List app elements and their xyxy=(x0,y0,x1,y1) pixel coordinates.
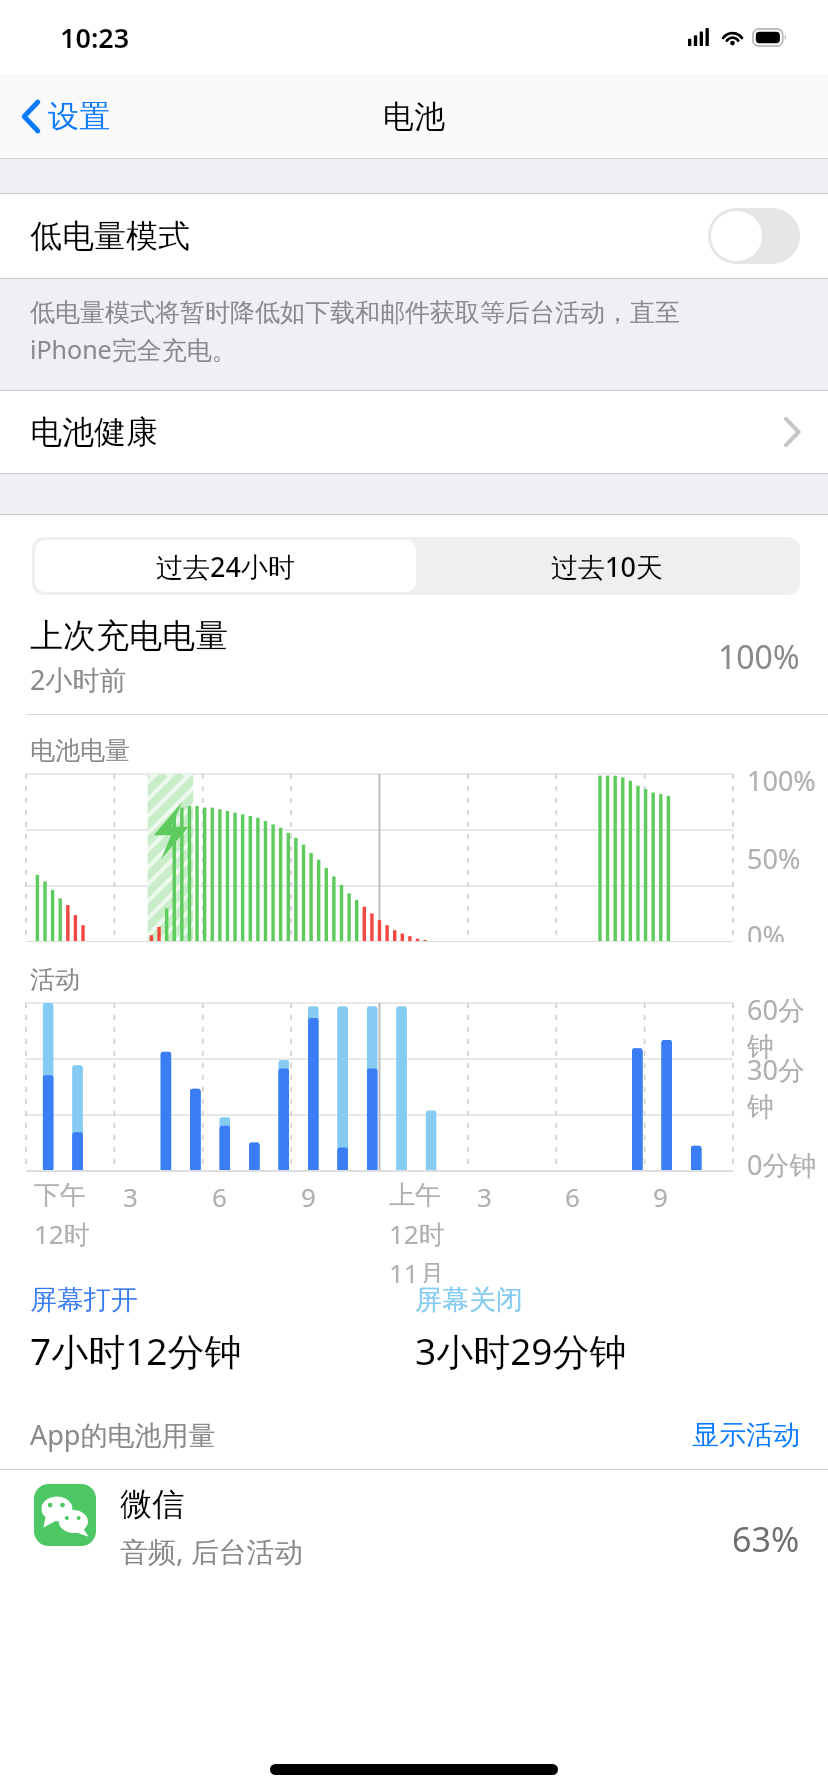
staticText: 2小时前 xyxy=(30,661,127,698)
staticText: 上次充电电量 xyxy=(30,615,228,657)
staticText: 100% xyxy=(718,635,800,679)
button[interactable]: 电池健康 xyxy=(0,391,828,473)
staticText: 过去10天 xyxy=(551,548,663,585)
staticText: 9 xyxy=(301,1179,316,1214)
staticText: 过去24小时 xyxy=(156,548,295,585)
staticText: 低电量模式将暂时降低如下载和邮件获取等后台活动，直至 iPhone完全充电。 xyxy=(30,297,680,366)
staticText: 3 xyxy=(477,1179,492,1214)
staticText: 电池 xyxy=(383,97,445,136)
staticText: 10:23 xyxy=(60,19,130,56)
staticText: 63% xyxy=(732,1516,800,1562)
staticText: 3 xyxy=(123,1179,138,1214)
button[interactable]: 设置 xyxy=(0,87,124,146)
staticText: 上午 12时 11月29日 xyxy=(389,1179,469,1283)
staticText: 低电量模式 xyxy=(30,216,190,256)
staticText: 下午 12时 xyxy=(34,1179,90,1252)
staticText: App的电池用量 xyxy=(30,1416,216,1453)
staticText: 0% xyxy=(747,917,785,954)
button[interactable]: 过去24小时 xyxy=(35,540,416,592)
staticText: 微信 xyxy=(120,1484,184,1524)
button[interactable]: 微信 xyxy=(0,1470,828,1590)
staticText: 显示活动 xyxy=(692,1418,800,1452)
staticText: 9 xyxy=(653,1179,668,1214)
staticText: 100% xyxy=(747,762,816,799)
staticText: 50% xyxy=(747,840,801,877)
staticText: 屏幕关闭 xyxy=(415,1283,523,1317)
staticText: 活动 xyxy=(30,964,80,995)
staticText: 3小时29分钟 xyxy=(415,1325,627,1376)
staticText: 屏幕打开 xyxy=(30,1283,138,1317)
staticText: 6 xyxy=(565,1179,580,1214)
button[interactable]: 显示活动 xyxy=(692,1418,800,1452)
staticText: 6 xyxy=(212,1179,227,1214)
staticText: 0分钟 xyxy=(747,1146,817,1183)
staticText: 30分钟 xyxy=(747,1051,828,1124)
button[interactable]: 过去10天 xyxy=(416,540,797,592)
staticText: 音频, 后台活动 xyxy=(120,1532,303,1570)
staticText: 7小时12分钟 xyxy=(30,1325,242,1376)
staticText: 电池健康 xyxy=(30,412,158,452)
staticText: 电池电量 xyxy=(30,735,130,766)
staticText: 设置 xyxy=(48,97,110,136)
staticText: 60分钟 xyxy=(747,991,828,1064)
button[interactable]: 低电量模式 xyxy=(0,194,828,278)
button[interactable]: 低电量模式 xyxy=(708,208,800,264)
